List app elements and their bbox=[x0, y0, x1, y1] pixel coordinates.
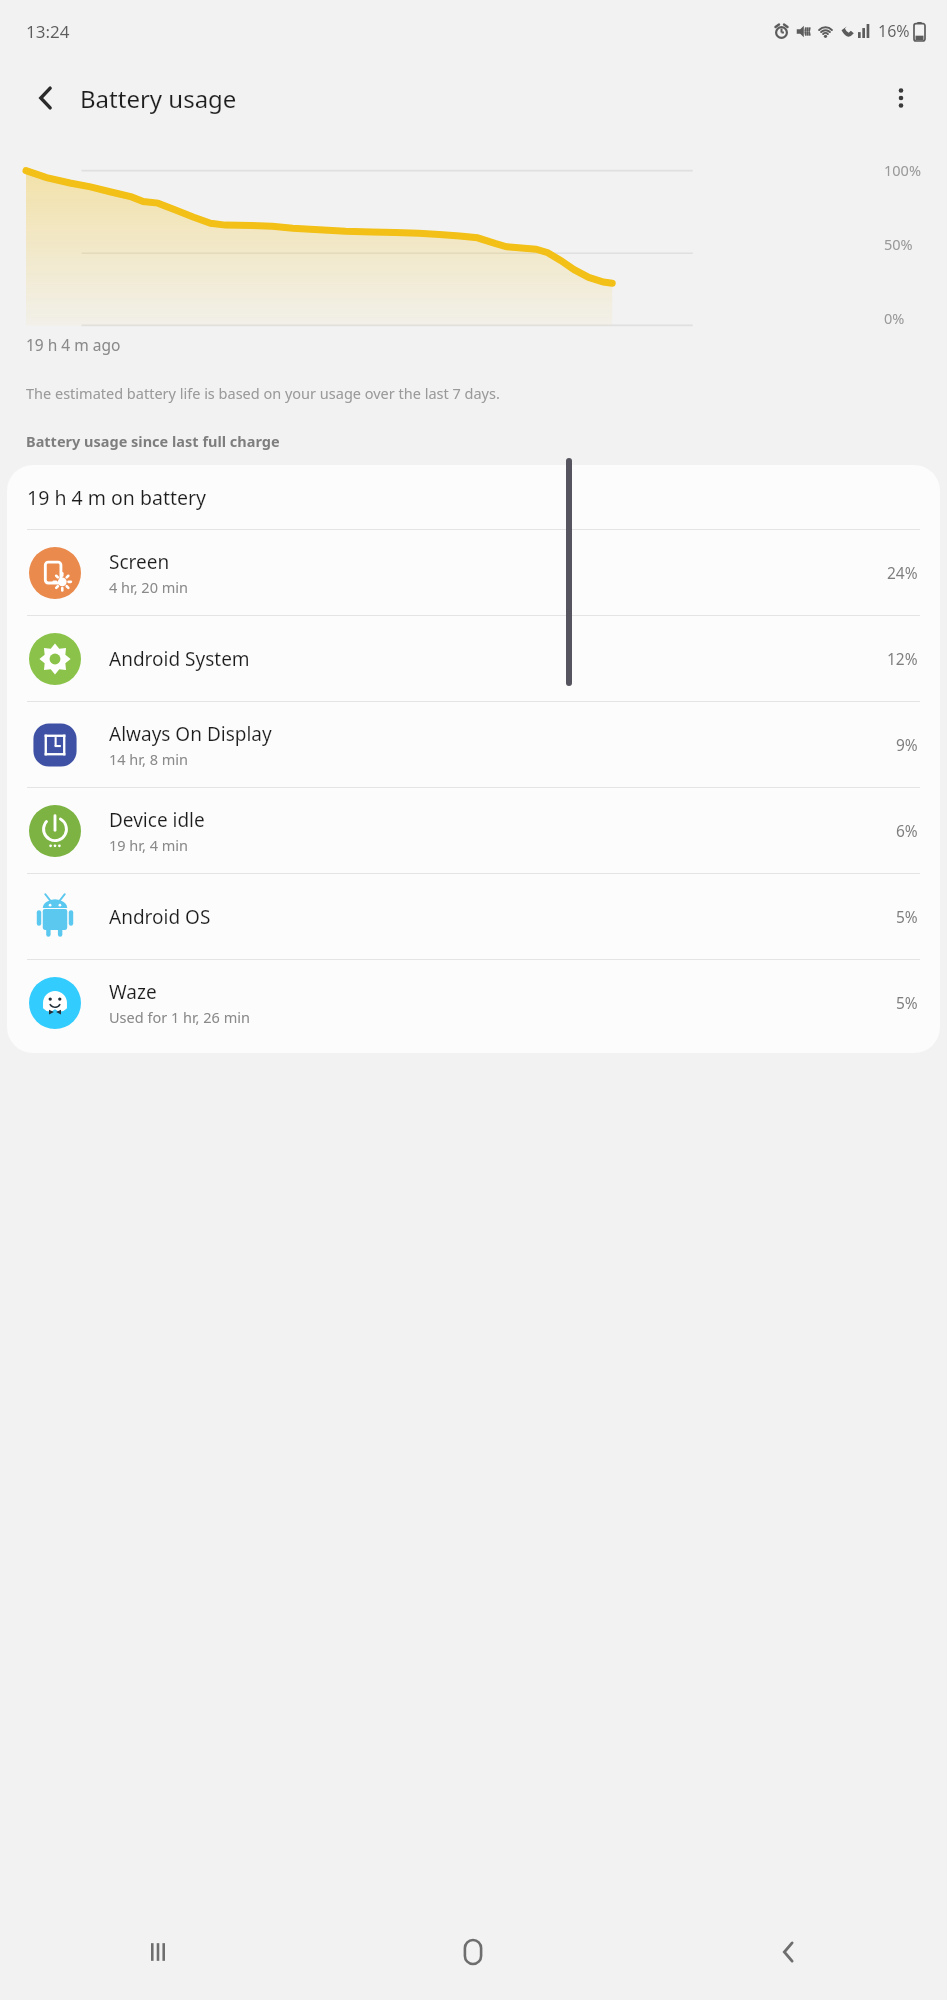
staticText: 19 hr, 4 min bbox=[109, 835, 188, 855]
staticText: Always On Display bbox=[109, 721, 272, 747]
staticText: 4 hr, 20 min bbox=[109, 577, 188, 597]
staticText: The estimated battery life is based on y… bbox=[26, 383, 500, 403]
button[interactable]: Recents bbox=[0, 1904, 315, 2000]
staticText: 100% bbox=[884, 160, 921, 180]
staticText: 0% bbox=[884, 308, 905, 328]
staticText: 12% bbox=[887, 648, 918, 669]
button[interactable]: Device idle bbox=[7, 788, 940, 873]
button[interactable]: Android System bbox=[7, 616, 940, 701]
staticText: Screen bbox=[109, 549, 170, 575]
staticText: Waze bbox=[109, 979, 157, 1005]
staticText: 6% bbox=[896, 820, 918, 841]
staticText: 13:24 bbox=[26, 20, 70, 43]
staticText: 16% bbox=[878, 20, 910, 42]
staticText: 9% bbox=[896, 734, 918, 755]
staticText: 5% bbox=[896, 992, 918, 1013]
staticText: Android System bbox=[109, 646, 250, 672]
staticText: Android OS bbox=[109, 904, 211, 930]
staticText: 19 h 4 m on battery bbox=[27, 484, 206, 511]
staticText: Battery usage since last full charge bbox=[26, 431, 280, 451]
staticText: 50% bbox=[884, 234, 913, 254]
staticText: 14 hr, 8 min bbox=[109, 749, 188, 769]
button[interactable]: Back bbox=[20, 72, 72, 124]
staticText: Used for 1 hr, 26 min bbox=[109, 1007, 250, 1027]
button[interactable]: Android OS bbox=[7, 874, 940, 959]
button[interactable]: Home bbox=[315, 1904, 631, 2000]
staticText: 19 h 4 m ago bbox=[26, 334, 121, 355]
staticText: 24% bbox=[887, 562, 918, 583]
staticText: 5% bbox=[896, 906, 918, 927]
button[interactable]: Waze bbox=[7, 960, 940, 1045]
staticText: Battery usage bbox=[80, 82, 237, 115]
button[interactable]: Screen bbox=[7, 530, 940, 615]
button[interactable]: More options bbox=[875, 72, 927, 124]
staticText: Device idle bbox=[109, 807, 205, 833]
button[interactable]: Always On Display bbox=[7, 702, 940, 787]
button[interactable]: Back bbox=[631, 1904, 947, 2000]
